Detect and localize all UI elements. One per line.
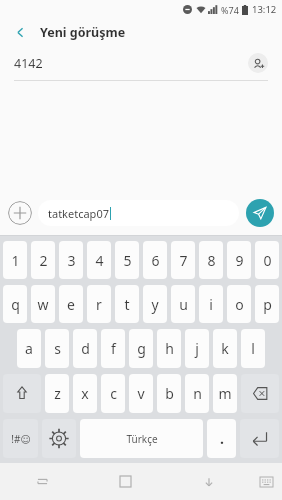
staticText: o xyxy=(235,295,244,314)
staticText: 1 xyxy=(11,251,20,270)
staticText: f xyxy=(111,339,116,358)
button[interactable]: 2 xyxy=(31,241,55,279)
button[interactable]: d xyxy=(73,329,97,368)
staticText: 0 xyxy=(263,251,272,270)
staticText: l xyxy=(251,339,255,358)
staticText: 13:12 xyxy=(252,3,277,16)
button[interactable]: l xyxy=(241,329,265,368)
staticText: t xyxy=(124,295,130,314)
button[interactable]: Shift xyxy=(3,374,41,413)
button[interactable]: Enter xyxy=(240,419,279,458)
staticText: . xyxy=(220,429,224,448)
staticText: Türkçe xyxy=(126,432,158,446)
staticText: 8 xyxy=(207,251,216,270)
staticText: v xyxy=(137,384,145,403)
button[interactable]: tatketcap07 xyxy=(38,200,239,226)
staticText: 6 xyxy=(151,251,160,270)
button[interactable]: 0 xyxy=(255,241,279,279)
button[interactable]: a xyxy=(17,329,41,368)
button[interactable]: b xyxy=(157,374,181,413)
staticText: %74 xyxy=(221,4,239,16)
button[interactable]: Send xyxy=(246,199,274,227)
button[interactable]: y xyxy=(143,285,167,323)
button[interactable]: 9 xyxy=(227,241,251,279)
button[interactable]: w xyxy=(31,285,55,323)
button[interactable]: m xyxy=(213,374,237,413)
staticText: p xyxy=(263,295,272,314)
button[interactable]: g xyxy=(129,329,153,368)
button[interactable]: 4 xyxy=(87,241,111,279)
staticText: tatketcap07 xyxy=(48,206,109,221)
staticText: d xyxy=(81,339,90,358)
button[interactable]: 7 xyxy=(171,241,195,279)
staticText: b xyxy=(165,384,174,403)
button[interactable]: e xyxy=(59,285,83,323)
staticText: 4 xyxy=(95,251,104,270)
button[interactable]: k xyxy=(213,329,237,368)
button[interactable]: Türkçe xyxy=(80,419,203,458)
button[interactable]: x xyxy=(73,374,97,413)
staticText: s xyxy=(54,339,61,358)
staticText: 7 xyxy=(179,251,188,270)
staticText: 4142 xyxy=(14,55,43,72)
staticText: m xyxy=(218,384,232,403)
button[interactable]: . xyxy=(207,419,236,458)
staticText: h xyxy=(165,339,174,358)
button[interactable]: h xyxy=(157,329,181,368)
button[interactable]: Back xyxy=(8,20,32,44)
staticText: 9 xyxy=(235,251,244,270)
button[interactable]: Add attachment xyxy=(8,201,32,225)
button[interactable]: 1 xyxy=(3,241,27,279)
staticText: g xyxy=(137,339,146,358)
staticText: 3 xyxy=(67,251,76,270)
button[interactable]: r xyxy=(87,285,111,323)
button[interactable]: p xyxy=(255,285,279,323)
button[interactable]: Settings xyxy=(42,419,76,458)
staticText: k xyxy=(221,339,229,358)
button[interactable]: t xyxy=(115,285,139,323)
button[interactable]: c xyxy=(101,374,125,413)
staticText: 5 xyxy=(123,251,132,270)
button[interactable]: q xyxy=(3,285,27,323)
staticText: j xyxy=(195,339,199,358)
button[interactable]: v xyxy=(129,374,153,413)
staticText: 2 xyxy=(39,251,48,270)
button[interactable]: Hide keyboard xyxy=(250,463,282,500)
staticText: q xyxy=(11,295,20,314)
button[interactable]: z xyxy=(45,374,69,413)
staticText: u xyxy=(179,295,188,314)
button[interactable]: Backspace xyxy=(241,374,279,413)
staticText: n xyxy=(193,384,202,403)
button[interactable]: Add recipient xyxy=(248,53,268,73)
staticText: a xyxy=(25,339,33,358)
button[interactable]: 3 xyxy=(59,241,83,279)
staticText: i xyxy=(209,295,213,314)
button[interactable]: Back xyxy=(167,463,250,500)
button[interactable]: 8 xyxy=(199,241,223,279)
button[interactable]: o xyxy=(227,285,251,323)
staticText: z xyxy=(54,384,61,403)
staticText: r xyxy=(96,295,102,314)
staticText: e xyxy=(67,295,75,314)
button[interactable]: i xyxy=(199,285,223,323)
staticText: !#☺ xyxy=(11,432,31,446)
staticText: c xyxy=(110,384,117,403)
button[interactable]: Recents xyxy=(0,463,84,500)
staticText: y xyxy=(151,295,159,314)
button[interactable]: 6 xyxy=(143,241,167,279)
button[interactable]: Home xyxy=(84,463,167,500)
staticText: Yeni görüşme xyxy=(40,24,126,41)
button[interactable]: n xyxy=(185,374,209,413)
staticText: x xyxy=(81,384,89,403)
button[interactable]: u xyxy=(171,285,195,323)
button[interactable]: f xyxy=(101,329,125,368)
button[interactable]: !#☺ xyxy=(3,419,38,458)
staticText: w xyxy=(37,295,49,314)
button[interactable]: s xyxy=(45,329,69,368)
button[interactable]: 5 xyxy=(115,241,139,279)
button[interactable]: j xyxy=(185,329,209,368)
